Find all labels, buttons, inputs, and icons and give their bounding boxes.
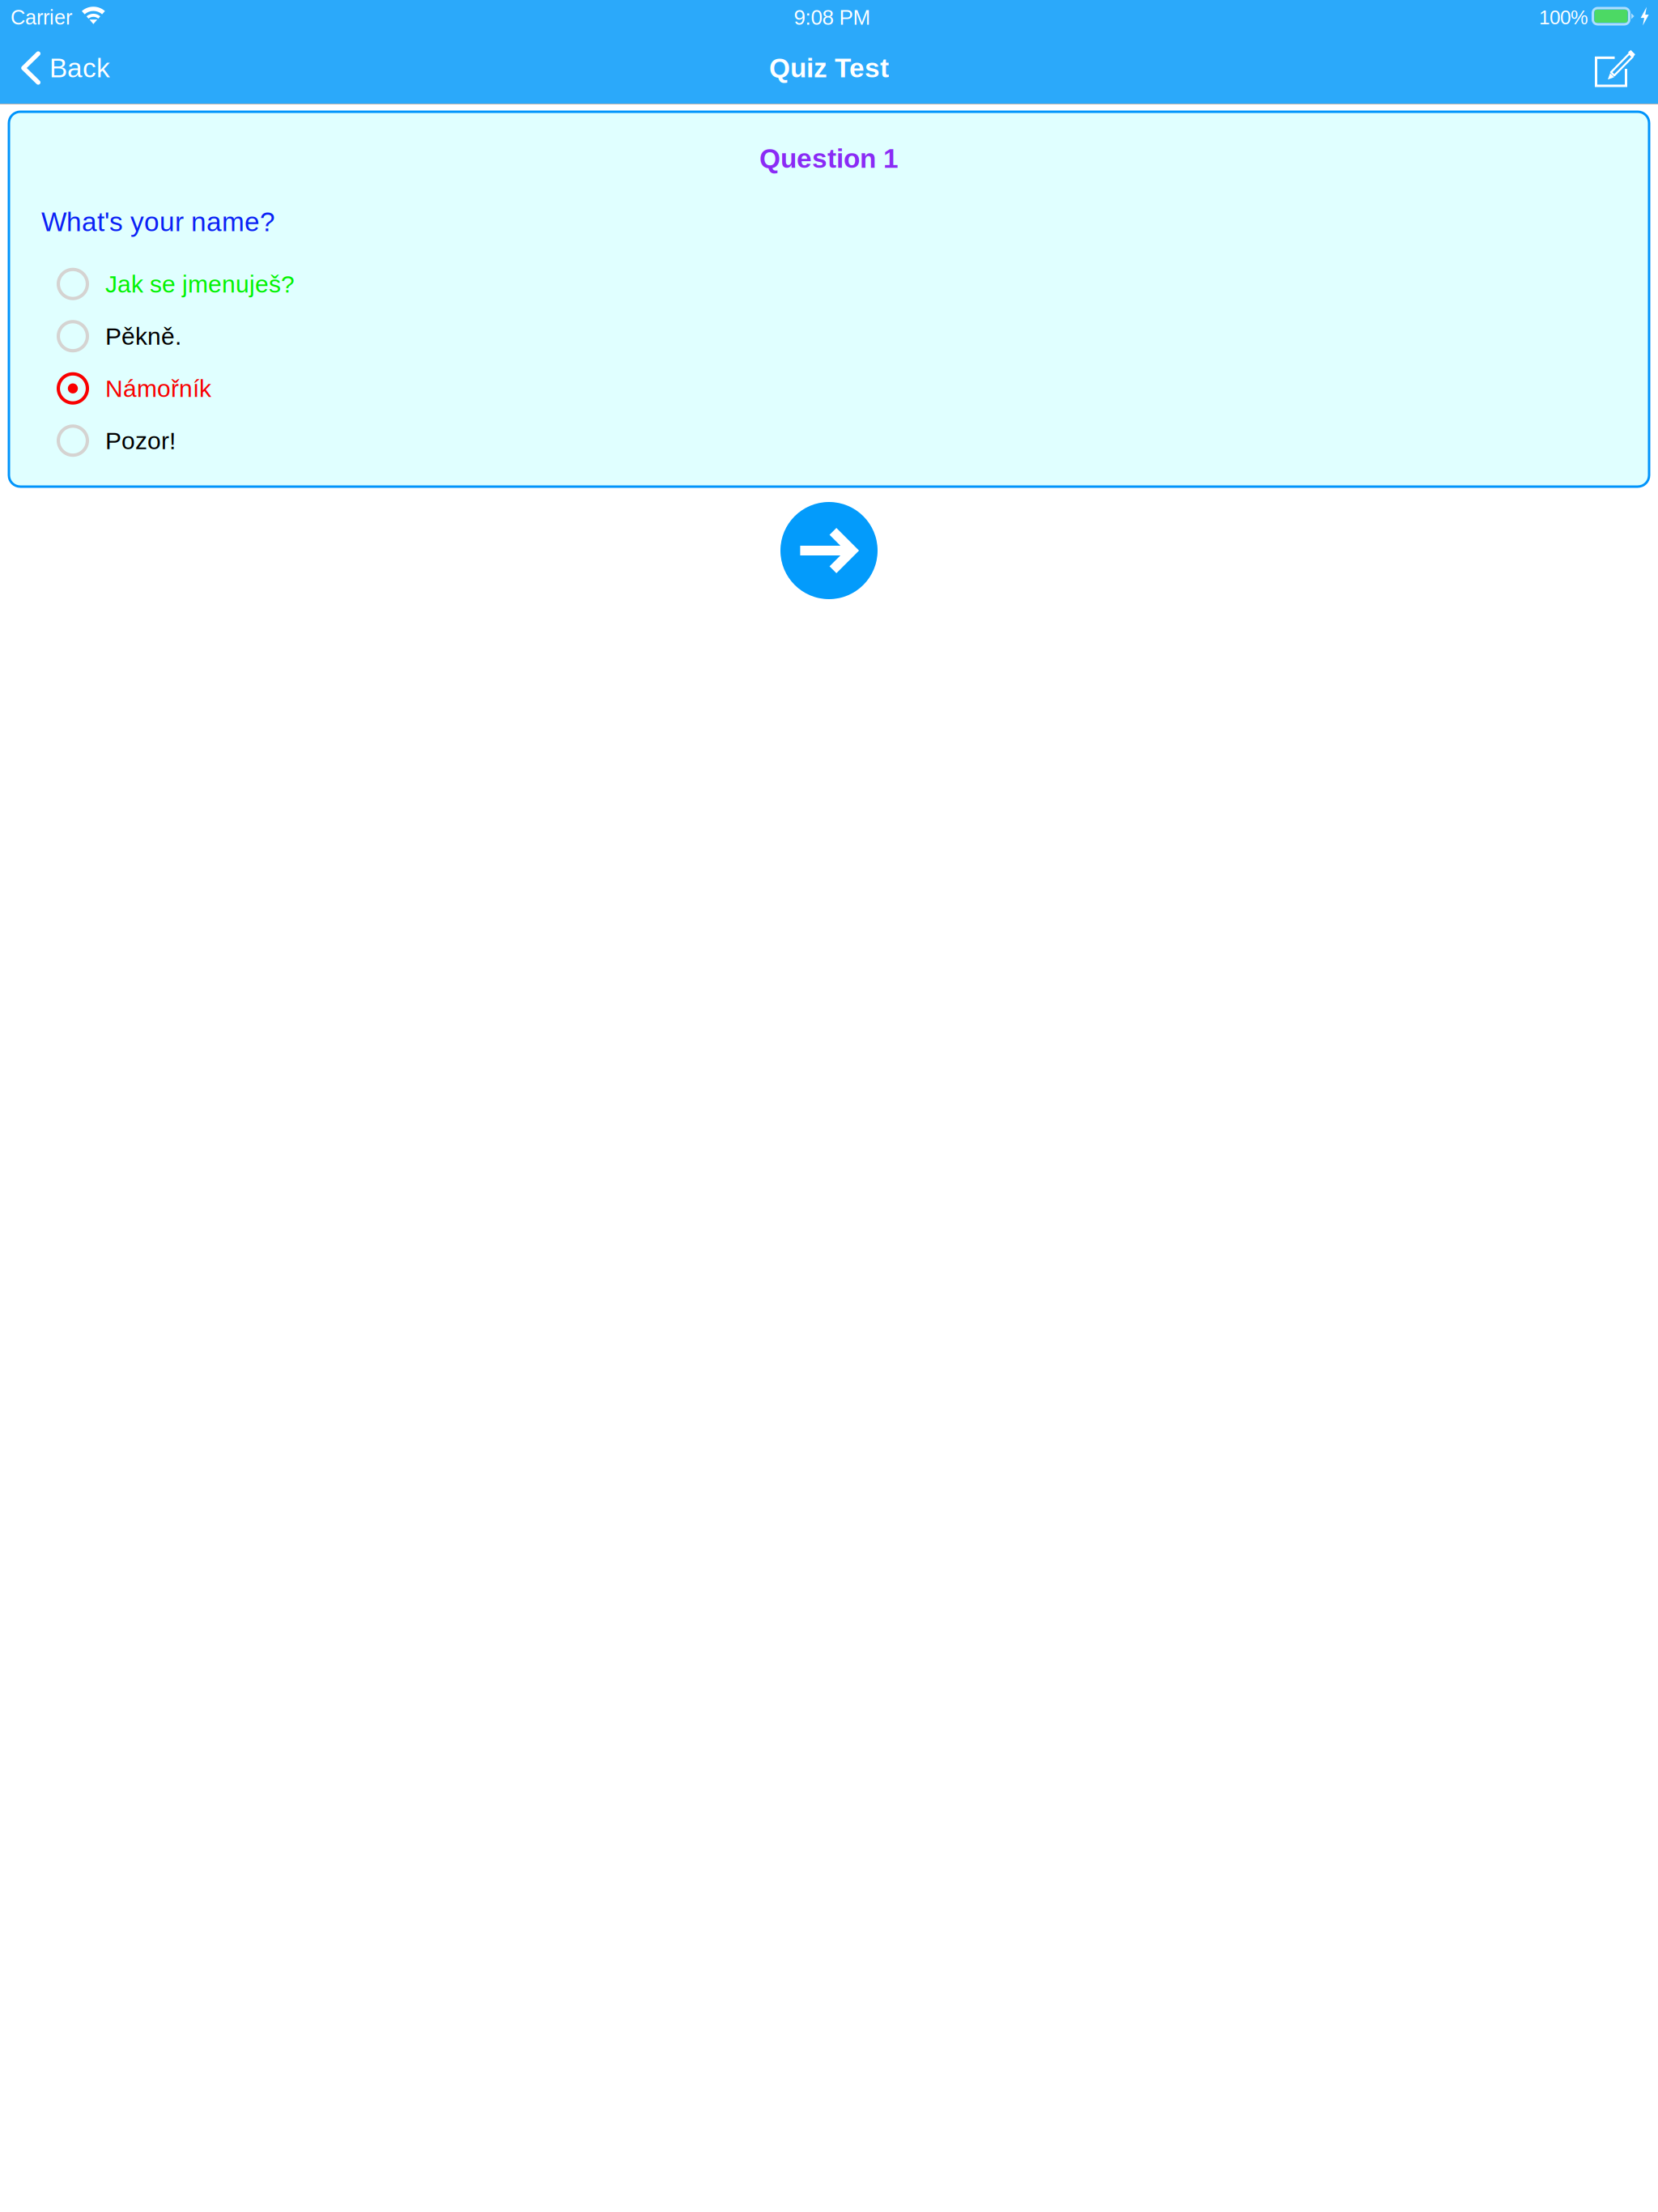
button[interactable]: Back xyxy=(0,32,125,104)
button[interactable]: Jak se jmenuješ? xyxy=(9,258,1649,310)
staticText: Back xyxy=(49,53,110,83)
staticText: Carrier xyxy=(11,6,72,29)
staticText: 100% xyxy=(1539,6,1588,28)
staticText: What's your name? xyxy=(41,207,275,237)
button[interactable]: Pěkně. xyxy=(9,310,1649,362)
staticText: Quiz Test xyxy=(769,53,889,83)
staticText: Question 1 xyxy=(759,143,899,173)
button[interactable]: Compose xyxy=(1577,32,1658,104)
button[interactable]: Next question xyxy=(780,502,878,599)
button[interactable]: Pozor! xyxy=(9,415,1649,467)
staticText: Pozor! xyxy=(105,427,176,454)
staticText: 9:08 PM xyxy=(794,6,871,29)
staticText: Námořník xyxy=(105,375,211,402)
staticText: Jak se jmenuješ? xyxy=(105,270,295,298)
button[interactable]: Námořník xyxy=(9,362,1649,415)
staticText: Pěkně. xyxy=(105,323,181,350)
